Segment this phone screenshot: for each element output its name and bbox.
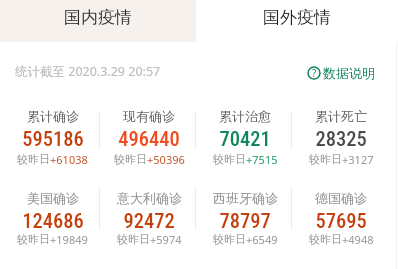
staticText: 较昨日 <box>114 152 147 166</box>
button[interactable]: 国外疫情 <box>196 0 398 42</box>
staticText: 78797 <box>219 209 271 233</box>
staticText: 较昨日 <box>309 232 342 246</box>
staticText: 较昨日 <box>117 232 150 246</box>
staticText: +19849 <box>50 232 88 247</box>
staticText: 较昨日 <box>17 152 50 166</box>
staticText: 595186 <box>22 127 84 151</box>
staticText: ? <box>312 66 317 80</box>
staticText: +3127 <box>342 152 374 167</box>
button[interactable]: 国内疫情 <box>0 0 196 42</box>
staticText: 28325 <box>315 127 367 151</box>
staticText: 92472 <box>123 209 175 233</box>
button[interactable]: 美国确诊 <box>4 185 101 267</box>
staticText: 70421 <box>219 127 271 151</box>
staticText: 较昨日 <box>17 232 50 246</box>
staticText: 数据说明 <box>323 65 375 81</box>
staticText: 累计死亡 <box>315 108 367 124</box>
button[interactable]: 意大利确诊 <box>101 185 197 267</box>
staticText: +5974 <box>150 232 182 247</box>
staticText: 较昨日 <box>213 232 246 246</box>
staticText: 累计确诊 <box>27 108 79 124</box>
staticText: 496440 <box>118 127 180 151</box>
staticText: 美国确诊 <box>27 190 79 206</box>
staticText: 西班牙确诊 <box>213 190 278 206</box>
staticText: 意大利确诊 <box>117 190 182 206</box>
button[interactable]: 累计死亡 <box>293 103 389 185</box>
staticText: 累计治愈 <box>219 108 271 124</box>
button[interactable]: 数据说明 <box>307 65 375 81</box>
staticText: 57695 <box>315 209 367 233</box>
staticText: 统计截至 2020.3.29 20:57 <box>15 63 161 80</box>
staticText: +4948 <box>342 232 374 247</box>
staticText: 124686 <box>22 209 84 233</box>
button[interactable]: 累计治愈 <box>197 103 293 185</box>
staticText: 现有确诊 <box>123 108 175 124</box>
button[interactable]: 累计确诊 <box>4 103 101 185</box>
button[interactable]: 现有确诊 <box>101 103 197 185</box>
staticText: +61038 <box>50 152 88 167</box>
other: 数据说明 <box>307 66 321 80</box>
staticText: +6549 <box>246 232 278 247</box>
staticText: +50396 <box>147 152 185 167</box>
staticText: 德国确诊 <box>315 190 367 206</box>
staticText: 较昨日 <box>213 152 246 166</box>
staticText: +7515 <box>246 152 278 167</box>
button[interactable]: 德国确诊 <box>293 185 389 267</box>
staticText: 国内疫情 <box>64 7 132 28</box>
staticText: 较昨日 <box>309 152 342 166</box>
button[interactable]: 西班牙确诊 <box>197 185 293 267</box>
staticText: 国外疫情 <box>263 7 331 28</box>
